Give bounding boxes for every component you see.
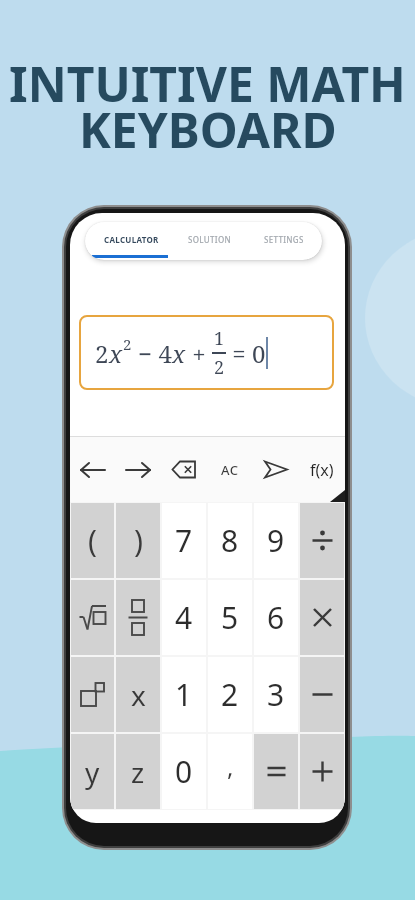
staticText: SOLUTION — [188, 234, 231, 245]
button[interactable]: ( — [71, 503, 114, 578]
button[interactable]: , — [208, 734, 252, 809]
staticText: 9 — [267, 520, 285, 561]
button[interactable]: f(x) — [299, 437, 345, 502]
button[interactable] — [300, 503, 344, 578]
button[interactable]: 5 — [208, 580, 252, 655]
staticText: 1 — [214, 326, 225, 351]
staticText: 3 — [267, 674, 285, 715]
staticText: SETTINGS — [264, 234, 304, 245]
button[interactable] — [161, 437, 207, 502]
button[interactable]: 2 — [79, 315, 334, 390]
button[interactable]: AC — [207, 437, 253, 502]
staticText: = 0 — [226, 337, 266, 370]
staticText: CALCULATOR — [104, 234, 159, 245]
button[interactable]: 4 — [162, 580, 206, 655]
staticText: ) — [134, 520, 143, 561]
button[interactable] — [115, 437, 161, 502]
staticText: x — [131, 676, 146, 714]
button[interactable] — [254, 734, 298, 809]
button[interactable] — [116, 580, 160, 655]
button[interactable]: ) — [116, 503, 160, 578]
staticText: 6 — [267, 597, 285, 638]
button[interactable]: 3 — [254, 657, 298, 732]
staticText: f(x) — [310, 459, 334, 481]
staticText: 2 — [95, 337, 109, 370]
staticText: 2 — [123, 334, 132, 354]
button[interactable]: 6 — [254, 580, 298, 655]
staticText: y — [85, 753, 100, 791]
button[interactable] — [300, 580, 344, 655]
staticText: , — [227, 750, 234, 783]
button[interactable]: 9 — [254, 503, 298, 578]
staticText: ( — [88, 520, 97, 561]
staticText: 0 — [175, 751, 193, 792]
staticText: 2 — [214, 355, 225, 380]
button[interactable] — [300, 734, 344, 809]
staticText: 5 — [221, 597, 239, 638]
button[interactable]: SOLUTION — [181, 222, 237, 257]
button[interactable]: CALCULATOR — [95, 222, 167, 257]
staticText: − 4 — [132, 337, 172, 370]
staticText: z — [131, 753, 145, 791]
staticText: AC — [221, 461, 239, 479]
staticText: 8 — [221, 520, 239, 561]
staticText: 2 — [221, 674, 239, 715]
button[interactable] — [71, 580, 114, 655]
button[interactable] — [300, 657, 344, 732]
button[interactable]: x — [116, 657, 160, 732]
button[interactable]: 1 — [162, 657, 206, 732]
staticText: + — [186, 337, 212, 370]
staticText: 1 — [175, 674, 193, 715]
staticText: KEYBOARD — [79, 97, 337, 162]
button[interactable]: 8 — [208, 503, 252, 578]
staticText: 7 — [175, 520, 193, 561]
button[interactable] — [71, 657, 114, 732]
staticText: x — [109, 337, 123, 370]
button[interactable] — [253, 437, 299, 502]
button[interactable]: 0 — [162, 734, 206, 809]
button[interactable]: 2 — [208, 657, 252, 732]
button[interactable]: z — [116, 734, 160, 809]
staticText: 4 — [175, 597, 193, 638]
button[interactable] — [70, 437, 115, 502]
staticText: x — [172, 337, 186, 370]
button[interactable]: y — [71, 734, 114, 809]
button[interactable]: 7 — [162, 503, 206, 578]
staticText: INTUITIVE MATH — [9, 51, 406, 116]
button[interactable]: SETTINGS — [257, 222, 311, 257]
